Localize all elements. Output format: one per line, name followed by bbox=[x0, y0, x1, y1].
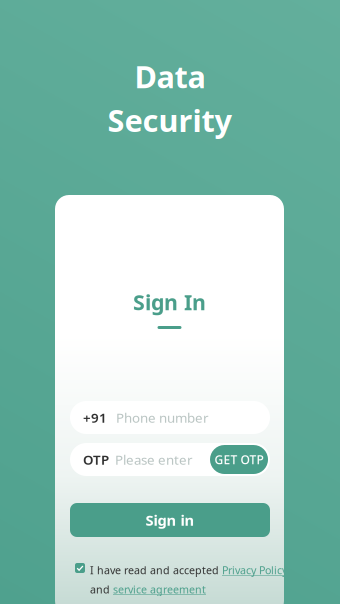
staticText: OTP bbox=[83, 451, 109, 468]
button[interactable]: Privacy Policy bbox=[222, 563, 287, 577]
staticText: Sign In bbox=[133, 288, 206, 316]
staticText: GET OTP bbox=[214, 451, 263, 467]
staticText: Data bbox=[134, 56, 205, 97]
staticText: I have read and accepted bbox=[90, 563, 222, 577]
button[interactable]: GET OTP bbox=[210, 445, 268, 474]
staticText: Security bbox=[107, 100, 232, 140]
staticText: service agreement bbox=[113, 582, 206, 596]
staticText: Phone number bbox=[116, 409, 209, 426]
button[interactable]: service agreement bbox=[113, 582, 206, 596]
staticText: +91 bbox=[83, 409, 107, 426]
button[interactable]: Accept the privacy policy and service ag… bbox=[75, 563, 85, 573]
staticText: Privacy Policy bbox=[222, 563, 287, 577]
staticText: and bbox=[90, 582, 113, 596]
staticText: Sign in bbox=[145, 510, 194, 530]
button[interactable]: Sign in bbox=[70, 503, 270, 537]
staticText: Please enter bbox=[115, 451, 193, 468]
